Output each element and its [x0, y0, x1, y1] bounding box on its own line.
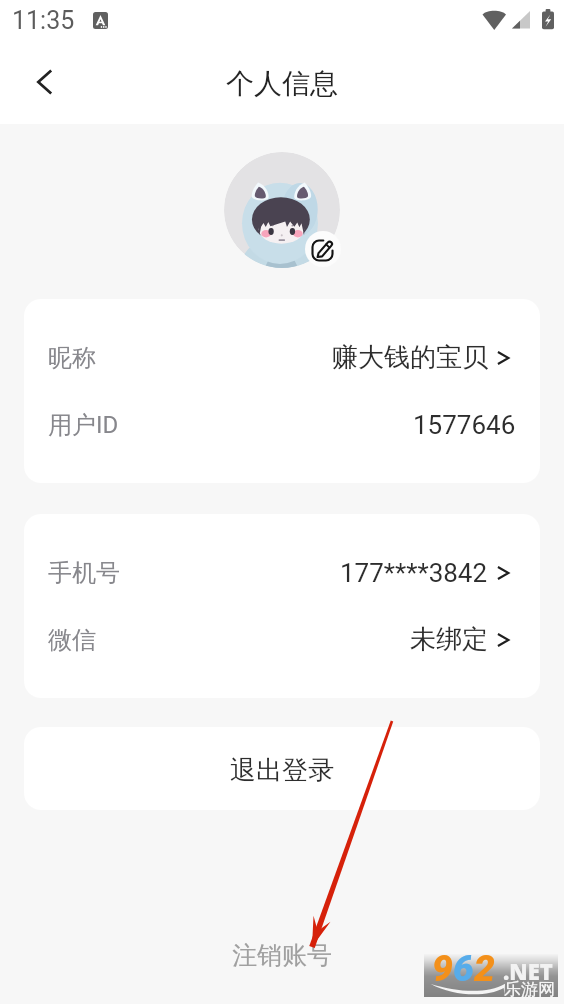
staticText: .NET	[503, 956, 553, 986]
staticText: 11:35	[12, 6, 75, 35]
staticText: 未绑定	[410, 623, 488, 656]
button[interactable]: Change avatar	[224, 152, 340, 268]
staticText: 赚大钱的宝贝	[332, 341, 488, 374]
staticText: 9	[432, 947, 453, 990]
staticText: 乐游网	[504, 979, 555, 1000]
button[interactable]: 昵称	[24, 324, 540, 391]
staticText: 注销账号	[232, 940, 332, 971]
staticText: 手机号	[48, 558, 120, 588]
button[interactable]: 微信	[24, 606, 540, 673]
staticText: 个人信息	[226, 66, 338, 101]
button[interactable]: Back	[18, 57, 74, 113]
staticText: 177****3842	[340, 558, 488, 588]
staticText: 2	[474, 947, 495, 990]
staticText: 昵称	[48, 343, 96, 373]
button[interactable]: 注销账号	[218, 933, 346, 978]
button[interactable]: 用户ID	[24, 391, 540, 458]
staticText: 1577646	[413, 410, 516, 440]
staticText: 6	[453, 947, 474, 990]
button[interactable]: 退出登录	[24, 727, 540, 810]
button[interactable]: Edit avatar	[305, 231, 341, 267]
staticText: 用户ID	[48, 410, 119, 440]
staticText: 微信	[48, 625, 96, 655]
button[interactable]: 手机号	[24, 539, 540, 606]
staticText: 退出登录	[230, 754, 334, 787]
